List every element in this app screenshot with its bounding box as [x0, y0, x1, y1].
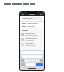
button[interactable]: Key [36, 63, 43, 66]
button[interactable]: Key [32, 59, 33, 62]
button[interactable] [20, 42, 44, 47]
button[interactable] [20, 25, 44, 28]
button[interactable] [20, 32, 44, 37]
button[interactable] [20, 22, 44, 25]
button[interactable]: Key [34, 59, 35, 62]
button[interactable] [20, 17, 44, 20]
button[interactable]: Key [28, 59, 29, 62]
button[interactable] [20, 37, 44, 42]
button[interactable]: Key [36, 59, 37, 62]
button[interactable]: Key [38, 59, 39, 62]
button[interactable]: Key [30, 59, 31, 62]
